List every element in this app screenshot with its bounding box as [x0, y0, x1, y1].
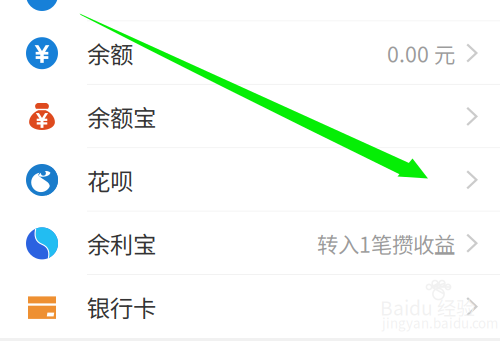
button[interactable]: 银行卡 [0, 275, 500, 338]
staticText: 0.00 元 [387, 38, 455, 69]
button[interactable]: 余额 [0, 21, 500, 85]
staticText: 银行卡 [87, 290, 156, 324]
button[interactable]: 花呗 [0, 148, 500, 212]
staticText: 转入1笔攒收益 [317, 228, 455, 259]
staticText: 余额 [87, 36, 133, 70]
staticText: 余利宝 [87, 226, 156, 260]
button[interactable]: 余利宝 [0, 212, 500, 275]
staticText: 花呗 [87, 163, 133, 197]
staticText: 余额宝 [87, 100, 156, 133]
button[interactable]: 余额宝 [0, 85, 500, 148]
staticText: jingyan.baidu.com [382, 313, 498, 332]
staticText: Baidu 经验 [380, 293, 475, 321]
